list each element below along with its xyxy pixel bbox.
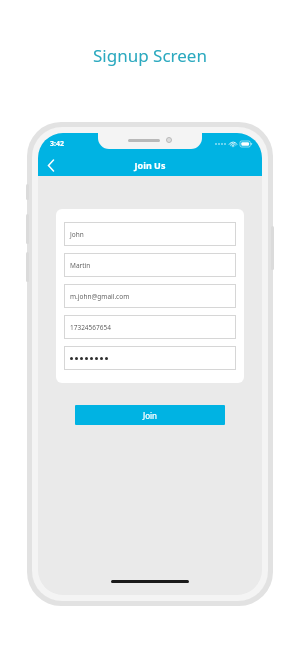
staticText: John xyxy=(70,230,84,239)
button[interactable]: 17324567654 xyxy=(64,315,236,339)
button[interactable]: John xyxy=(64,222,236,246)
staticText: Martin xyxy=(70,261,91,270)
staticText: Signup Screen xyxy=(0,44,300,67)
button[interactable]: Join xyxy=(75,405,225,425)
staticText: 3:42 xyxy=(50,139,64,149)
button[interactable]: Martin xyxy=(64,253,236,277)
staticText: Join Us xyxy=(38,159,262,171)
staticText: 17324567654 xyxy=(70,323,111,332)
button[interactable]: m.john@gmail.com xyxy=(64,284,236,308)
staticText: m.john@gmail.com xyxy=(70,292,130,301)
button[interactable] xyxy=(64,346,236,370)
staticText: Join xyxy=(143,410,158,421)
button[interactable]: Back xyxy=(38,154,64,176)
